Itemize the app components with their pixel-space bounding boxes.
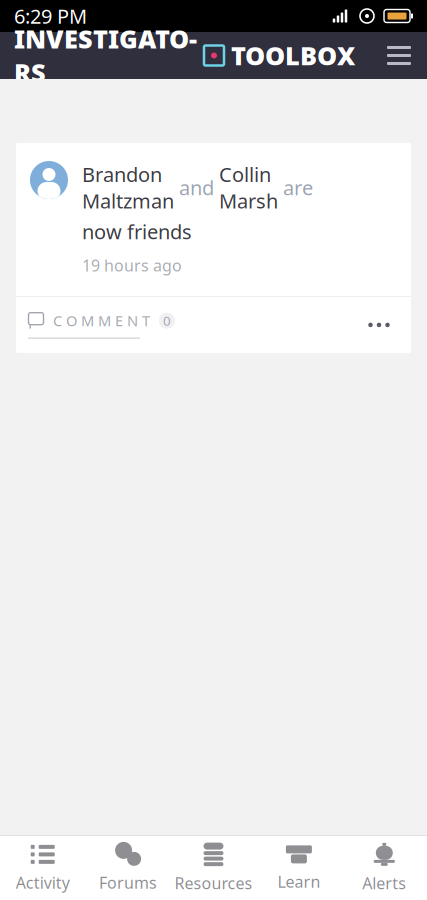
button[interactable]: Learn <box>256 834 342 900</box>
staticText: Collin Marsh <box>219 161 278 214</box>
staticText: now friends <box>82 218 192 245</box>
button[interactable]: Forums <box>85 833 171 900</box>
staticText: are <box>278 174 313 201</box>
staticText: Resources <box>174 872 252 894</box>
button[interactable]: Activity <box>0 833 85 900</box>
staticText: Learn <box>277 871 320 892</box>
staticText: Brandon Maltzman <box>82 161 174 214</box>
staticText: 0 <box>163 312 171 329</box>
staticText: Activity <box>16 872 70 893</box>
button[interactable]: Menu <box>376 32 422 78</box>
staticText: 19 hours ago <box>82 255 182 276</box>
button[interactable]: C O M M E N T <box>16 302 183 348</box>
button[interactable]: Alerts <box>342 832 427 900</box>
staticText: Forums <box>99 872 157 893</box>
staticText: C O M M E N T <box>53 311 150 330</box>
button[interactable]: Resources <box>171 832 256 900</box>
staticText: and <box>174 174 219 201</box>
staticText: 6:29 PM <box>14 3 87 29</box>
staticText: Alerts <box>362 872 406 894</box>
button[interactable]: More options <box>351 301 407 349</box>
staticText: TOOLBOX <box>231 39 355 72</box>
staticText: INVESTIGATORS <box>14 22 197 89</box>
